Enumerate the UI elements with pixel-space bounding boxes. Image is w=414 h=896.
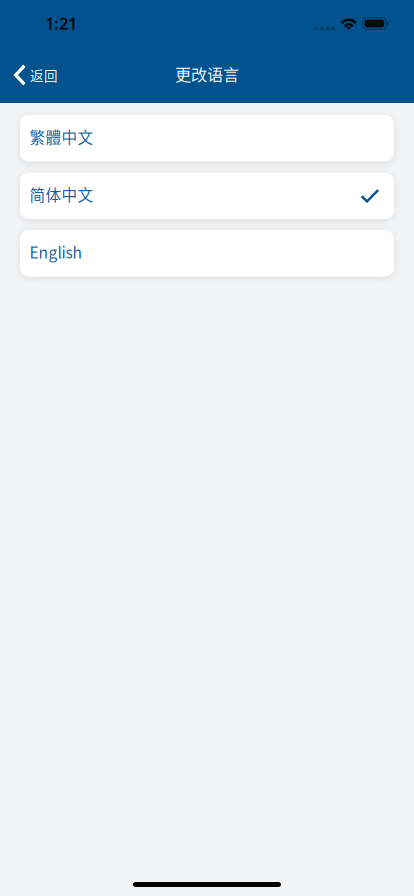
staticText: 1:21 bbox=[45, 12, 77, 35]
button[interactable]: English bbox=[20, 230, 394, 276]
button[interactable]: 简体中文 bbox=[20, 172, 394, 219]
button[interactable]: 繁體中文 bbox=[20, 115, 394, 161]
staticText: 简体中文 bbox=[29, 183, 93, 206]
staticText: English bbox=[29, 240, 81, 263]
staticText: 繁體中文 bbox=[29, 125, 93, 148]
staticText: 更改语言 bbox=[175, 62, 239, 85]
staticText: 返回 bbox=[30, 65, 58, 85]
button[interactable]: 返回 bbox=[0, 57, 70, 93]
